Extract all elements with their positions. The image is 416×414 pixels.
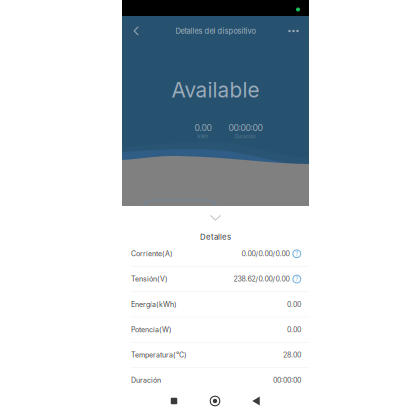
button[interactable]: Recents bbox=[155, 391, 193, 411]
staticText: Corriente(A) bbox=[131, 249, 173, 258]
button[interactable]: Potencia(W) bbox=[122, 317, 309, 342]
button[interactable]: Back bbox=[237, 391, 275, 411]
button[interactable]: Corriente(A) bbox=[122, 241, 309, 266]
staticText: kWh bbox=[197, 134, 208, 139]
button[interactable]: Collapse bbox=[195, 211, 235, 225]
staticText: ? bbox=[295, 275, 298, 283]
staticText: Tensión(V) bbox=[131, 275, 168, 283]
staticText: Detalles bbox=[200, 232, 231, 242]
staticText: 28.00 bbox=[283, 351, 301, 359]
staticText: ? bbox=[295, 250, 298, 257]
button[interactable]: Tensión(V) bbox=[122, 267, 309, 291]
staticText: 0.00 bbox=[287, 300, 301, 309]
staticText: Temperatura(°C) bbox=[131, 351, 187, 359]
staticText: 0.00 bbox=[287, 325, 301, 334]
staticText: Duración bbox=[235, 134, 256, 139]
staticText: 238.62/0.00/0.00 bbox=[234, 275, 290, 283]
staticText: 00:00:00 bbox=[228, 123, 262, 133]
staticText: Detalles del dispositivo bbox=[175, 26, 255, 35]
button[interactable]: Home bbox=[196, 391, 234, 411]
button[interactable]: More options bbox=[280, 19, 306, 43]
staticText: Potencia(W) bbox=[131, 325, 172, 334]
staticText: 0.00/0.00/0.00 bbox=[242, 249, 290, 258]
staticText: Energía(kWh) bbox=[131, 300, 177, 309]
button[interactable]: Temperatura(°C) bbox=[122, 343, 309, 367]
staticText: Available bbox=[171, 77, 259, 103]
staticText: 0.00 bbox=[194, 123, 211, 133]
button[interactable]: Back bbox=[123, 19, 149, 43]
button[interactable]: Duración bbox=[122, 368, 309, 393]
staticText: Duración bbox=[131, 376, 161, 384]
staticText: 00:00:00 bbox=[273, 376, 301, 384]
button[interactable]: Energía(kWh) bbox=[122, 292, 309, 317]
